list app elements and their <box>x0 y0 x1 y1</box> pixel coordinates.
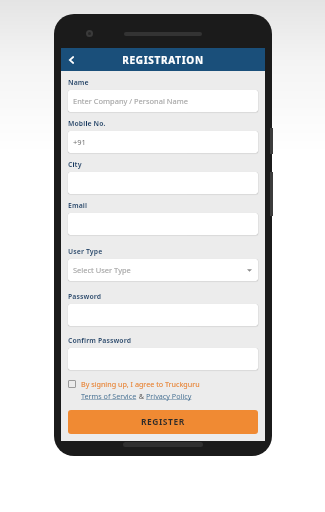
staticText: Name <box>68 78 89 87</box>
staticText: Enter Company / Personal Name <box>73 96 188 106</box>
button[interactable]: Terms of Service <box>81 391 137 401</box>
staticText: Email <box>68 201 88 210</box>
staticText: & <box>137 391 146 401</box>
button[interactable]: REGISTER <box>68 410 258 434</box>
staticText: REGISTRATION <box>122 53 204 67</box>
staticText: +91 <box>73 137 86 147</box>
button[interactable]: Back <box>61 49 83 71</box>
staticText: Mobile No. <box>68 119 106 128</box>
button[interactable]: +91 <box>68 131 258 153</box>
button[interactable]: Enter Company / Personal Name <box>68 90 258 112</box>
button[interactable]: Privacy Policy <box>146 391 192 401</box>
staticText: Select User Type <box>73 265 131 275</box>
button[interactable]: Select User Type <box>68 259 258 281</box>
staticText: Confirm Password <box>68 336 132 345</box>
staticText: City <box>68 160 82 169</box>
staticText: By signing up, I agree to Truckguru <box>81 379 200 389</box>
staticText: User Type <box>68 247 103 256</box>
button[interactable]: By signing up, I agree to Truckguru <box>68 379 258 401</box>
staticText: REGISTER <box>141 416 185 428</box>
staticText: Password <box>68 292 102 301</box>
